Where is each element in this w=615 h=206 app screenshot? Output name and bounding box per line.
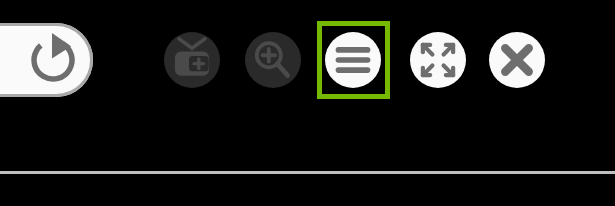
button[interactable]: Fullscreen [410, 32, 466, 88]
button[interactable]: Zoom in [245, 32, 301, 88]
button[interactable]: Refresh [0, 23, 93, 97]
button[interactable]: Close [489, 32, 545, 88]
button[interactable]: Menu [325, 32, 381, 88]
button[interactable]: Add to library [164, 32, 220, 88]
